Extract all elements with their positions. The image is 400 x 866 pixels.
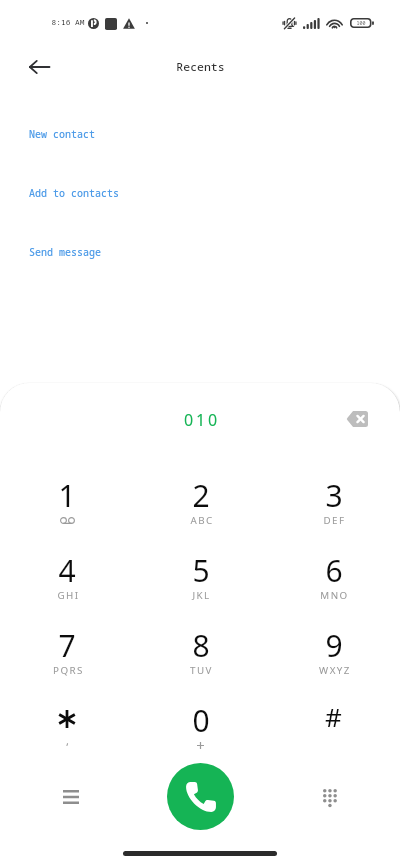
button[interactable]: 6 (267, 533, 400, 608)
staticText: # (325, 699, 342, 734)
button[interactable]: Send message (0, 222, 400, 281)
button[interactable]: New contact (0, 104, 400, 163)
button[interactable]: 7 (0, 608, 134, 683)
staticText: 2 (192, 475, 210, 516)
button[interactable]: Call options (49, 775, 93, 819)
button[interactable]: 4 (0, 533, 134, 608)
button[interactable]: Star (0, 683, 134, 758)
staticText: 4 (58, 550, 76, 591)
staticText: JKL (192, 589, 211, 602)
staticText: 6 (325, 550, 343, 591)
button[interactable]: 0 (134, 683, 267, 758)
button[interactable]: Backspace (337, 399, 377, 439)
staticText: PQRS (53, 664, 84, 677)
staticText: 8:16 AM (51, 17, 85, 28)
button[interactable]: Call (167, 763, 234, 830)
staticText: Send message (29, 245, 101, 259)
staticText: Recents (176, 59, 225, 75)
staticText: 100 (356, 20, 366, 27)
button[interactable]: Dialpad (307, 775, 351, 819)
staticText: 1 (58, 475, 76, 516)
button[interactable]: 3 (267, 458, 400, 533)
button[interactable]: Add to contacts (0, 163, 400, 222)
button[interactable]: 9 (267, 608, 400, 683)
staticText: 010 (184, 409, 220, 431)
staticText: ABC (190, 514, 214, 527)
staticText: MNO (320, 589, 349, 602)
staticText: 8 (192, 625, 210, 666)
button[interactable]: Back (19, 47, 59, 87)
staticText: 0 (192, 700, 210, 741)
staticText: 3 (325, 475, 343, 516)
staticText: WXYZ (319, 664, 351, 677)
button[interactable]: 5 (134, 533, 267, 608)
button[interactable]: 8 (134, 608, 267, 683)
staticText: 7 (58, 625, 76, 666)
staticText: GHI (57, 589, 80, 602)
staticText: 9 (325, 625, 343, 666)
button[interactable]: 1 (0, 458, 134, 533)
staticText: TUV (190, 664, 213, 677)
staticText: DEF (323, 514, 346, 527)
button[interactable]: # (267, 683, 400, 758)
staticText: , (66, 733, 69, 748)
staticText: Add to contacts (29, 186, 119, 200)
button[interactable]: 2 (134, 458, 267, 533)
staticText: 5 (192, 550, 210, 591)
staticText: New contact (29, 127, 95, 141)
